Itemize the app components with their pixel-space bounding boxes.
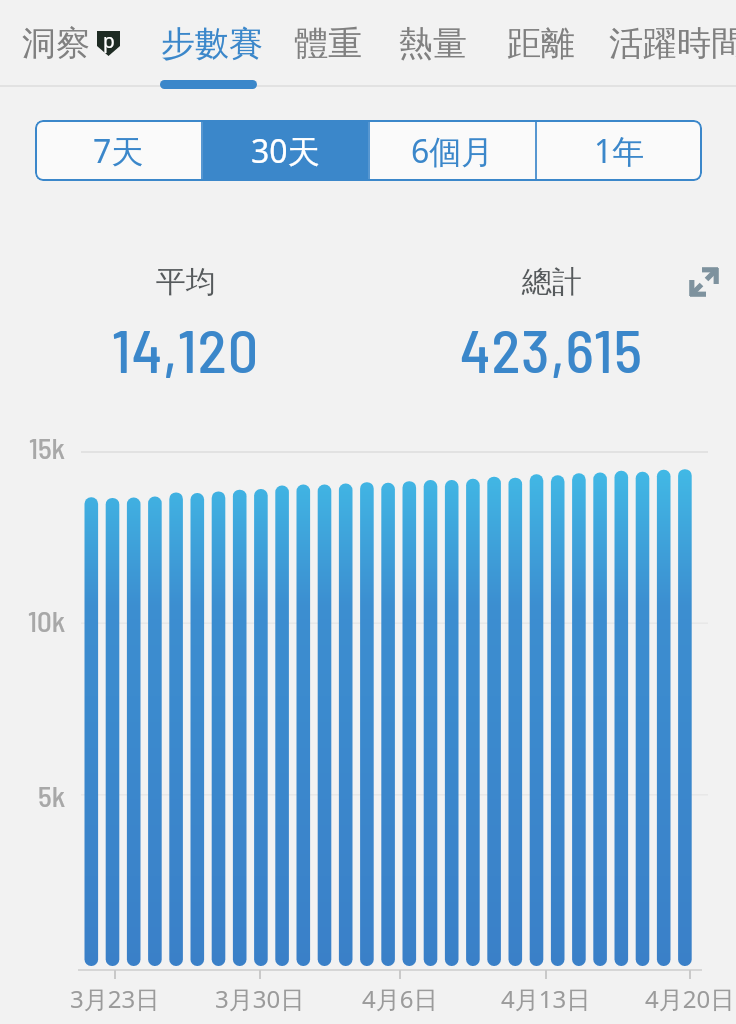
staticText: 4月6日 [362,982,438,1015]
staticText: 7天 [93,129,144,173]
button[interactable]: 7天 [35,120,201,181]
staticText: 30天 [251,129,320,173]
button[interactable]: 步數賽 [161,22,263,65]
staticText: 總計 [522,263,582,301]
staticText: 3月23日 [70,982,160,1015]
button[interactable]: 活躍時間 [609,22,736,65]
staticText: 15k [29,430,66,465]
staticText: 步數賽 [161,22,263,65]
staticText: 423,615 [460,313,644,385]
button[interactable]: 1年 [537,120,702,181]
staticText: 距離 [507,22,575,65]
staticText: 1年 [594,129,645,173]
button[interactable]: 體重 [294,22,362,65]
staticText: 洞察 [22,22,90,65]
button[interactable] [684,262,724,302]
staticText: 體重 [294,22,362,65]
staticText: 4月13日 [501,982,591,1015]
staticText: 活躍時間 [609,22,736,65]
staticText: p [103,28,115,53]
staticText: 4月20日 [645,982,735,1015]
button[interactable]: 洞察 [22,22,120,65]
staticText: 5k [38,778,66,813]
staticText: 3月30日 [215,982,305,1015]
button[interactable]: 30天 [203,120,368,181]
button[interactable]: 熱量 [399,22,467,65]
staticText: 6個月 [411,129,494,173]
staticText: 熱量 [399,22,467,65]
staticText: 平均 [156,263,216,301]
button[interactable]: 6個月 [370,120,535,181]
button[interactable]: 距離 [507,22,575,65]
staticText: 14,120 [112,313,260,385]
staticText: 10k [28,603,66,638]
